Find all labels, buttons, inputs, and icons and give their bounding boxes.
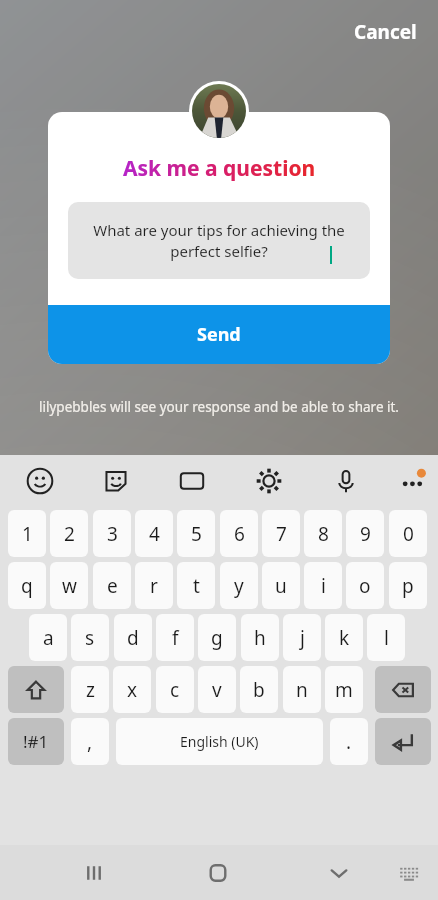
staticText: z: [86, 677, 95, 703]
staticText: h: [254, 625, 266, 651]
button[interactable]: English (UK): [116, 718, 323, 765]
button[interactable]: Switch keyboard: [389, 853, 429, 893]
button[interactable]: b: [240, 666, 278, 713]
button[interactable]: l: [367, 614, 405, 661]
staticText: o: [359, 573, 371, 599]
staticText: 3: [107, 521, 118, 547]
staticText: p: [402, 573, 414, 599]
staticText: Ask me a question: [123, 154, 316, 183]
staticText: 0: [403, 521, 414, 547]
button[interactable]: More options: [393, 461, 433, 501]
button[interactable]: f: [156, 614, 194, 661]
staticText: 5: [191, 521, 202, 547]
button[interactable]: 4: [135, 510, 173, 557]
staticText: m: [335, 677, 353, 703]
button[interactable]: 2: [50, 510, 88, 557]
staticText: 9: [360, 521, 371, 547]
button[interactable]: n: [283, 666, 321, 713]
button[interactable]: GIF: [172, 461, 212, 501]
button[interactable]: p: [389, 562, 427, 609]
staticText: 1: [22, 521, 33, 547]
button[interactable]: Voice input: [326, 461, 366, 501]
button[interactable]: o: [346, 562, 384, 609]
staticText: b: [253, 677, 265, 703]
button[interactable]: ,: [71, 718, 109, 765]
staticText: Cancel: [354, 19, 417, 45]
button[interactable]: 1: [8, 510, 46, 557]
staticText: y: [234, 573, 244, 599]
staticText: k: [339, 625, 350, 651]
button[interactable]: v: [198, 666, 236, 713]
button[interactable]: h: [241, 614, 279, 661]
button[interactable]: Shift: [8, 666, 64, 713]
button[interactable]: z: [71, 666, 109, 713]
button[interactable]: 9: [346, 510, 384, 557]
button[interactable]: t: [177, 562, 215, 609]
button[interactable]: s: [71, 614, 109, 661]
staticText: English (UK): [180, 732, 259, 751]
staticText: j: [300, 625, 305, 651]
staticText: c: [170, 677, 180, 703]
button[interactable]: e: [93, 562, 131, 609]
staticText: f: [172, 625, 179, 651]
staticText: .: [346, 729, 352, 755]
button[interactable]: Recents: [74, 853, 114, 893]
staticText: d: [127, 625, 139, 651]
staticText: ,: [87, 729, 93, 755]
staticText: a: [43, 625, 54, 651]
button[interactable]: m: [325, 666, 363, 713]
button[interactable]: Cancel: [340, 10, 430, 54]
staticText: 8: [318, 521, 329, 547]
button[interactable]: Backspace: [375, 666, 431, 713]
staticText: l: [384, 625, 389, 651]
button[interactable]: Home: [198, 853, 238, 893]
button[interactable]: .: [330, 718, 368, 765]
button[interactable]: 5: [177, 510, 215, 557]
button[interactable]: c: [156, 666, 194, 713]
button[interactable]: 3: [93, 510, 131, 557]
staticText: 4: [149, 521, 160, 547]
staticText: x: [127, 677, 138, 703]
button[interactable]: y: [220, 562, 258, 609]
button[interactable]: Stickers: [96, 461, 136, 501]
staticText: !#1: [23, 730, 49, 753]
staticText: q: [21, 573, 33, 599]
button[interactable]: w: [50, 562, 88, 609]
button[interactable]: 8: [304, 510, 342, 557]
staticText: u: [275, 573, 287, 599]
staticText: g: [211, 625, 223, 651]
button[interactable]: x: [113, 666, 151, 713]
staticText: s: [85, 625, 95, 651]
button[interactable]: Settings: [249, 461, 289, 501]
staticText: Send: [197, 322, 241, 347]
button[interactable]: Hide keyboard: [319, 853, 359, 893]
button[interactable]: k: [325, 614, 363, 661]
button[interactable]: r: [135, 562, 173, 609]
staticText: n: [296, 677, 308, 703]
staticText: 7: [276, 521, 287, 547]
button[interactable]: d: [114, 614, 152, 661]
button[interactable]: q: [8, 562, 46, 609]
staticText: w: [62, 573, 77, 599]
staticText: i: [321, 573, 326, 599]
button[interactable]: Send: [48, 305, 390, 364]
button[interactable]: !#1: [8, 718, 64, 765]
staticText: 6: [234, 521, 245, 547]
button[interactable]: 7: [262, 510, 300, 557]
staticText: r: [150, 573, 158, 599]
staticText: lilypebbles will see your response and b…: [39, 398, 399, 416]
button[interactable]: 0: [389, 510, 427, 557]
button[interactable]: g: [198, 614, 236, 661]
staticText: v: [212, 677, 222, 703]
button[interactable]: u: [262, 562, 300, 609]
button[interactable]: Enter: [375, 718, 431, 765]
staticText: 2: [64, 521, 75, 547]
button[interactable]: Emoji: [20, 461, 60, 501]
button[interactable]: j: [283, 614, 321, 661]
button[interactable]: i: [304, 562, 342, 609]
button[interactable]: What are your tips for achieving the per…: [68, 202, 370, 279]
button[interactable]: a: [29, 614, 67, 661]
button[interactable]: 6: [220, 510, 258, 557]
staticText: What are your tips for achieving the per…: [93, 220, 345, 262]
staticText: e: [107, 573, 118, 599]
